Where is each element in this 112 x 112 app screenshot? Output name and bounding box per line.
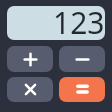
button[interactable]: Multiply: [7, 77, 53, 102]
button[interactable]: Equals: [59, 77, 105, 102]
button[interactable]: Minus: [59, 46, 105, 72]
button[interactable]: Plus: [7, 46, 53, 72]
staticText: 123: [53, 6, 105, 36]
